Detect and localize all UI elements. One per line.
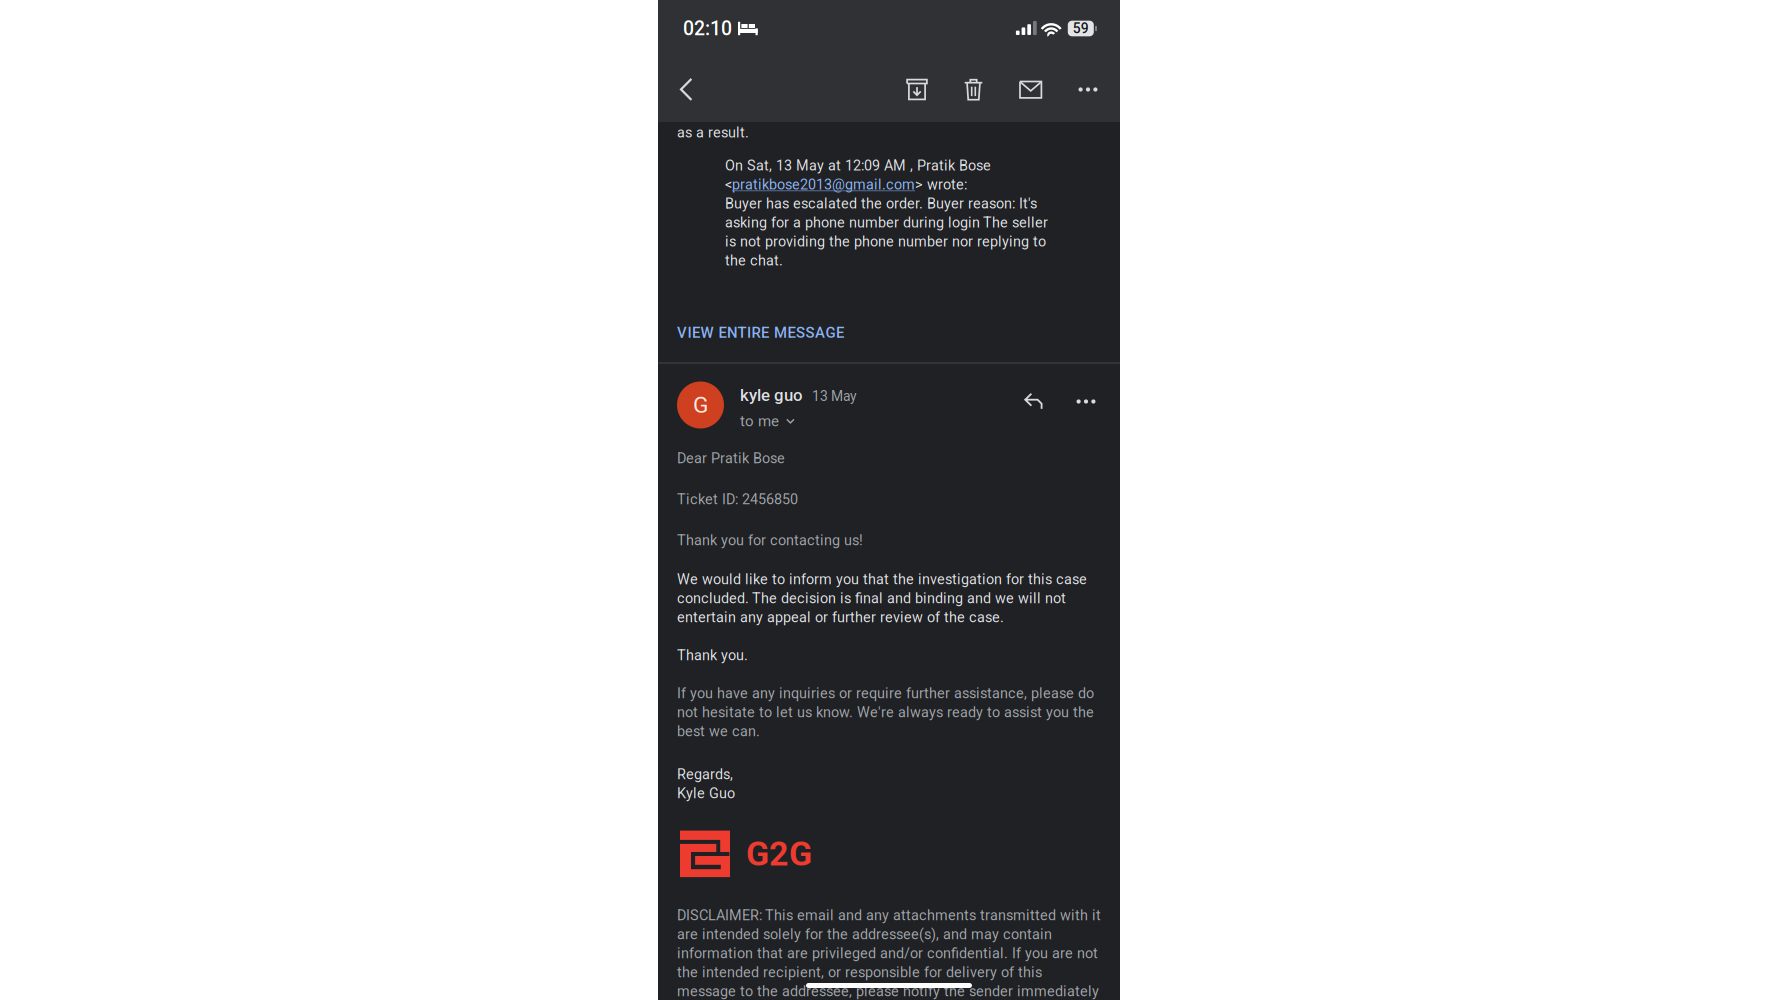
button[interactable]: Delete — [945, 57, 1002, 122]
button[interactable]: Archive — [889, 57, 945, 122]
staticText: asking for a phone number during login T… — [725, 214, 1048, 231]
button[interactable]: Back — [660, 57, 712, 122]
staticText: pratikbose2013@gmail.com — [732, 176, 915, 193]
staticText: 13 May — [812, 388, 857, 404]
staticText: > wrote: — [915, 176, 967, 193]
staticText: 02:10 — [683, 17, 732, 40]
staticText: kyle guo — [740, 385, 803, 405]
staticText: entertain any appeal or further review o… — [677, 609, 1004, 626]
staticText: On Sat, 13 May at 12:09 AM , Pratik Bose — [725, 157, 991, 174]
staticText: best we can. — [677, 723, 760, 740]
staticText: Ticket ID: 2456850 — [677, 491, 798, 508]
button[interactable]: VIEW ENTIRE MESSAGE — [658, 312, 858, 353]
staticText: is not providing the phone number nor re… — [725, 233, 1046, 250]
staticText: 59 — [1073, 20, 1089, 37]
staticText: concluded. The decision is final and bin… — [677, 590, 1066, 607]
staticText: Regards, — [677, 766, 733, 783]
staticText: G — [693, 392, 708, 418]
button[interactable]: More options — [1065, 381, 1107, 421]
staticText: Thank you for contacting us! — [677, 532, 863, 549]
button[interactable]: More options — [1059, 57, 1117, 122]
button[interactable]: Reply — [1009, 381, 1058, 421]
button[interactable]: Mark as unread — [1002, 57, 1059, 122]
staticText: Dear Pratik Bose — [677, 450, 785, 467]
staticText: message to the addressee, please notify … — [677, 983, 1099, 1000]
staticText: If you have any inquiries or require fur… — [677, 685, 1094, 702]
staticText: to me — [740, 412, 779, 430]
staticText: DISCLAIMER: This email and any attachmen… — [677, 907, 1101, 924]
staticText: Thank you. — [677, 647, 748, 664]
staticText: Kyle Guo — [677, 785, 735, 802]
staticText: < — [725, 176, 732, 193]
staticText: G2G — [746, 834, 812, 874]
staticText: Buyer has escalated the order. Buyer rea… — [725, 195, 1037, 212]
staticText: We would like to inform you that the inv… — [677, 571, 1087, 588]
staticText: not hesitate to let us know. We're alway… — [677, 704, 1094, 721]
staticText: the intended recipient, or responsible f… — [677, 964, 1042, 981]
staticText: VIEW ENTIRE MESSAGE — [677, 324, 844, 341]
staticText: information that are privileged and/or c… — [677, 945, 1098, 962]
staticText: the chat. — [725, 252, 783, 269]
staticText: as a result. — [677, 124, 749, 141]
staticText: are intended solely for the addressee(s)… — [677, 926, 1052, 943]
